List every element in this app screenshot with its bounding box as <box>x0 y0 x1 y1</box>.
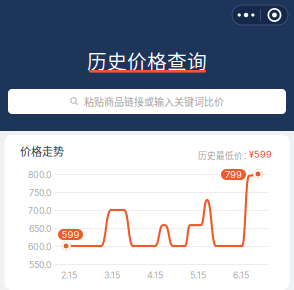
staticText: 599 <box>61 229 79 240</box>
staticText: 550.0 <box>29 259 52 270</box>
staticText: 6.15 <box>233 270 249 281</box>
staticText: 价格走势 <box>20 143 64 159</box>
staticText: 650.0 <box>29 223 52 234</box>
staticText: 粘贴商品链接或输入关键词比价 <box>84 94 224 109</box>
staticText: 2.15 <box>61 270 77 281</box>
staticText: 700.0 <box>28 205 52 216</box>
staticText: 历史最低价： <box>198 149 252 161</box>
button[interactable]: 粘贴商品链接或输入关键词比价 <box>8 89 286 114</box>
staticText: 800.0 <box>28 169 52 180</box>
staticText: 750.0 <box>29 187 52 198</box>
staticText: 5.15 <box>190 270 206 281</box>
staticText: 4.15 <box>147 270 163 281</box>
staticText: 3.15 <box>104 270 120 281</box>
button[interactable]: More options <box>232 5 288 25</box>
staticText: 799 <box>225 169 242 180</box>
staticText: ¥599 <box>249 149 272 160</box>
staticText: 600.0 <box>28 241 52 252</box>
staticText: 历史价格查询 <box>87 46 207 75</box>
